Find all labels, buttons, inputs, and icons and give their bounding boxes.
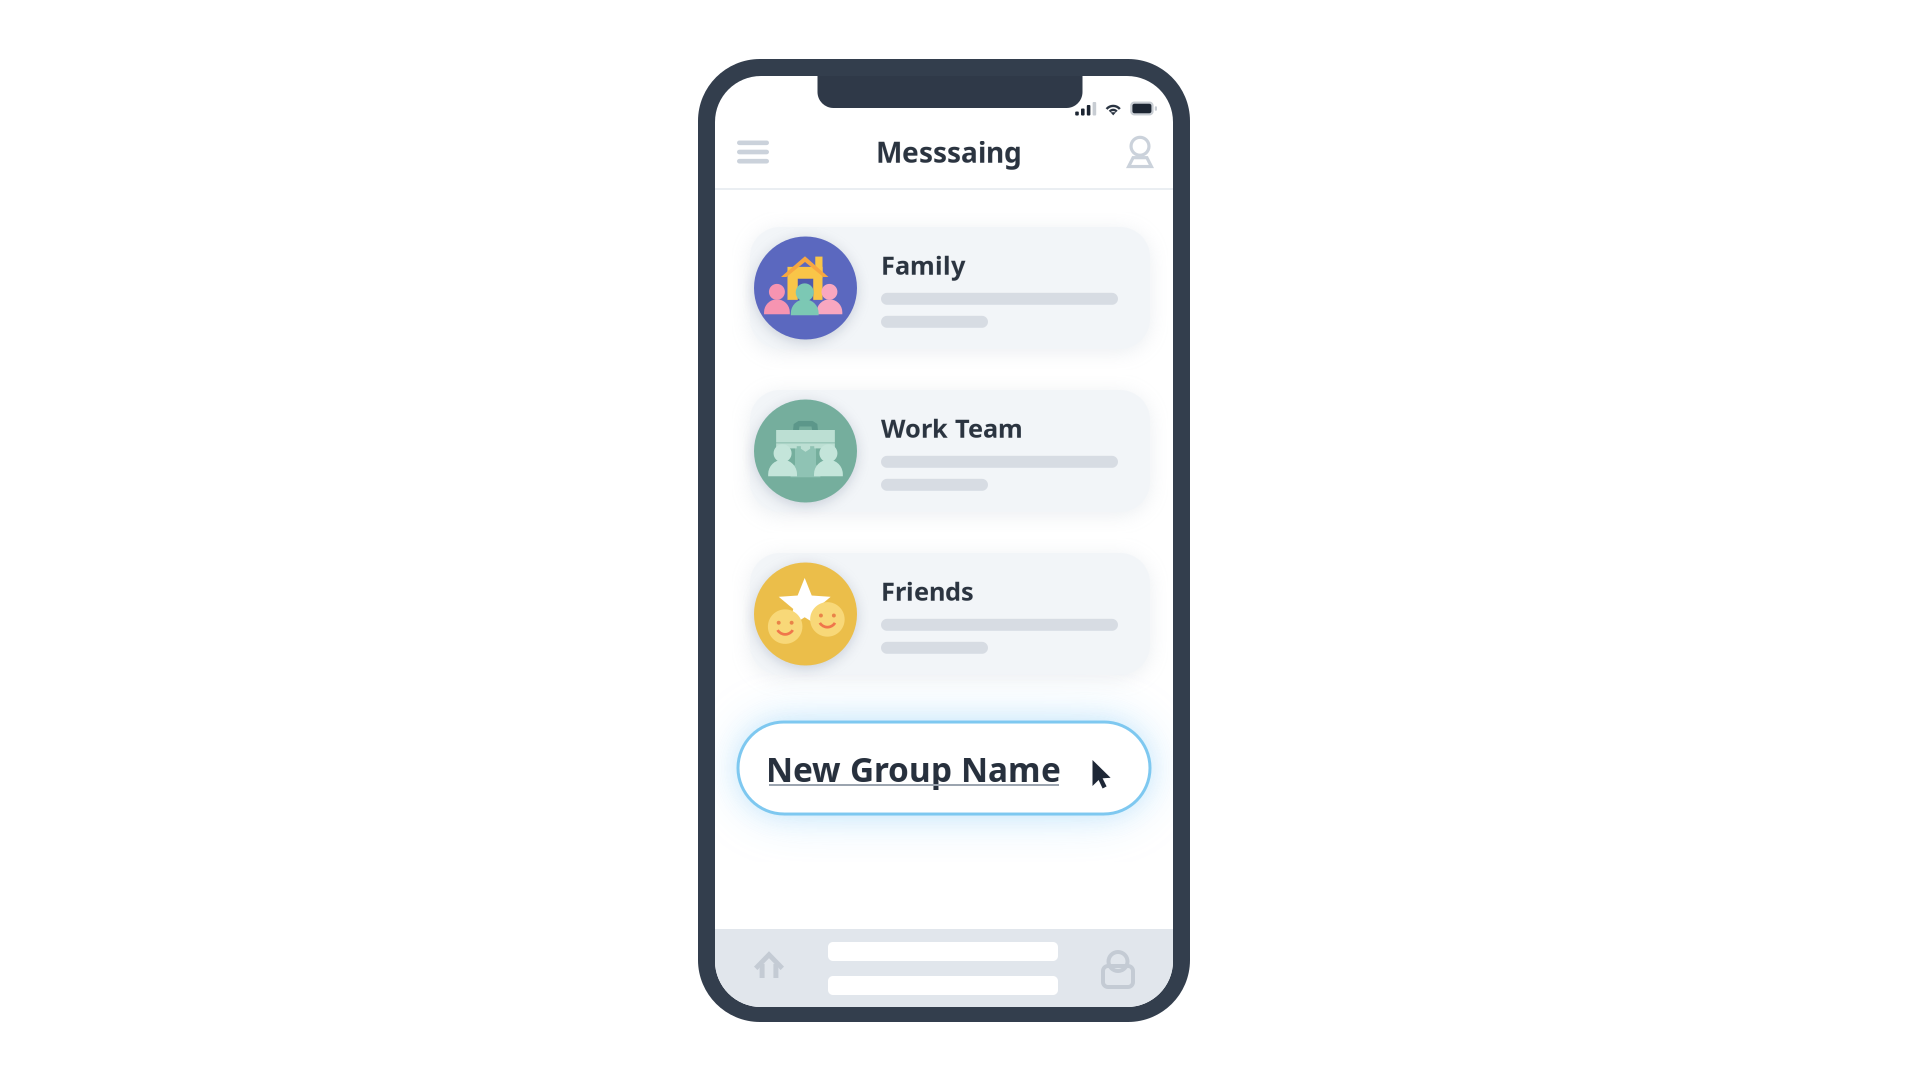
staticText: Work Team: [881, 411, 1023, 445]
button[interactable]: Work Team: [744, 390, 1144, 512]
staticText: Friends: [881, 574, 974, 608]
button[interactable]: Family: [744, 227, 1144, 349]
button[interactable]: Friends: [744, 553, 1144, 675]
button[interactable]: Profile: [1120, 131, 1160, 173]
button[interactable]: New Group Name: [738, 722, 1150, 814]
staticText: Messsaing: [876, 133, 1022, 171]
button[interactable]: Profile: [1093, 937, 1143, 988]
staticText: New Group Name: [766, 747, 1061, 791]
staticText: Family: [881, 248, 965, 282]
button[interactable]: Home: [744, 939, 794, 988]
button[interactable]: Menu: [728, 131, 778, 172]
